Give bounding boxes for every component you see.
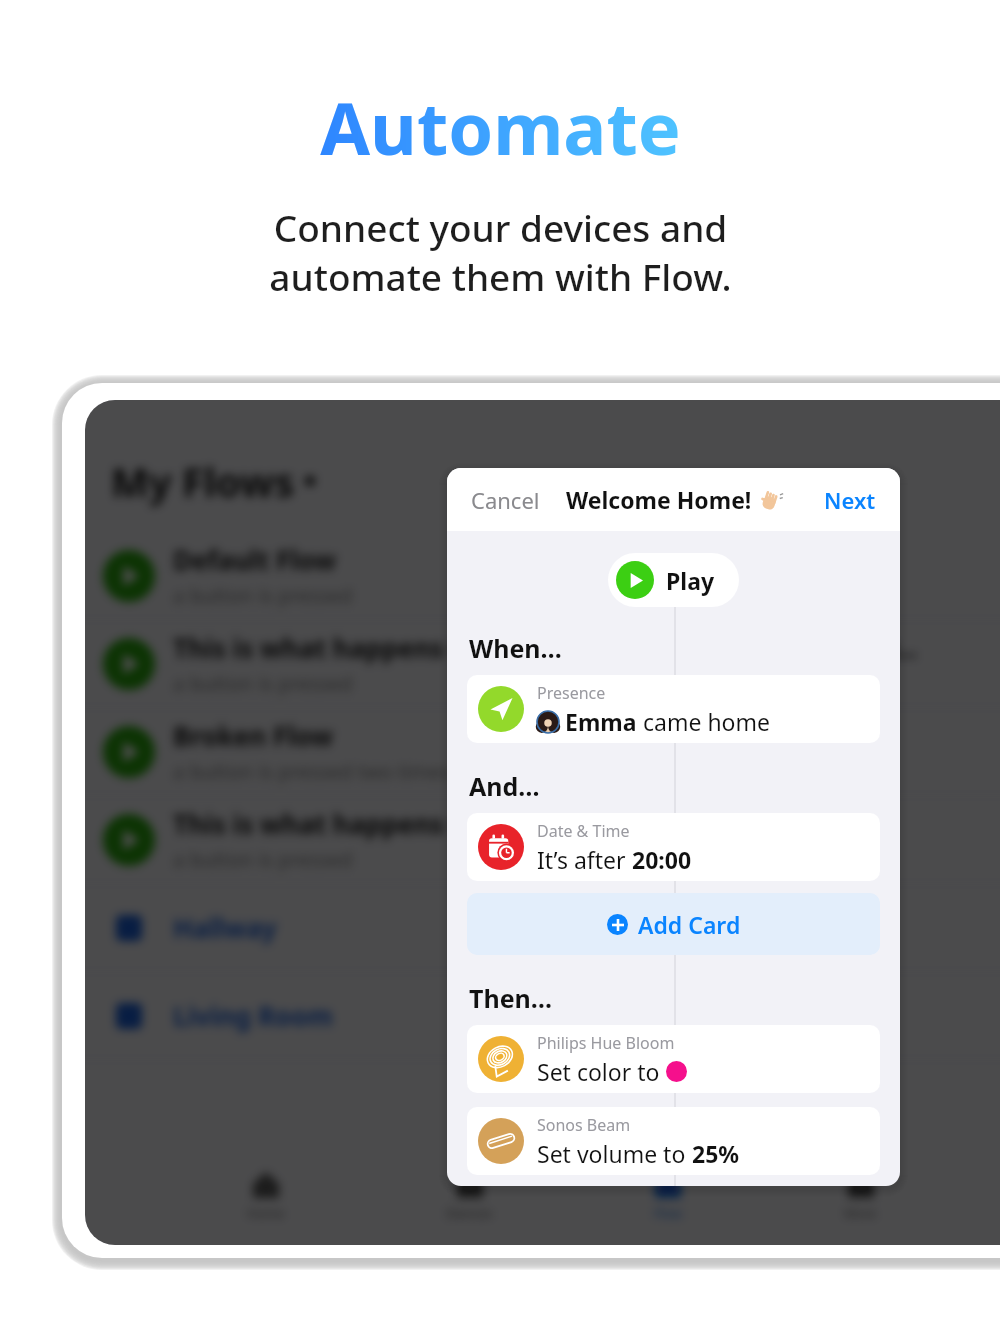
staticText: Add Card	[638, 909, 741, 940]
button[interactable]: Date & Time	[467, 813, 880, 881]
staticText: Cancel	[471, 485, 540, 515]
staticText: a button is pressed two times	[173, 758, 450, 785]
staticText: 20:00	[632, 844, 692, 875]
staticText: Default Flow	[173, 542, 336, 577]
button[interactable]: Add Card	[467, 893, 880, 955]
button[interactable]: Sonos Beam	[467, 1107, 880, 1175]
staticText: Set color to	[537, 1056, 666, 1087]
staticText: My Flows	[111, 454, 295, 508]
staticText: Hallway	[173, 910, 277, 945]
staticText: Philips Hue Bloom	[537, 1032, 675, 1054]
staticText: Date & Time	[537, 820, 630, 842]
staticText: Connect your devices and automate them w…	[269, 202, 732, 302]
staticText: 25%	[692, 1138, 740, 1169]
staticText: Then…	[469, 981, 553, 1015]
button[interactable]: Play	[608, 553, 739, 607]
staticText: It’s after	[537, 844, 632, 875]
staticText: Living Room	[173, 998, 333, 1033]
staticText: Next	[824, 485, 876, 515]
staticText: Set volume to	[537, 1138, 692, 1169]
staticText: Sonos Beam	[537, 1114, 631, 1136]
button[interactable]: Cancel	[467, 481, 544, 519]
staticText: Presence	[537, 682, 606, 704]
staticText: Emma	[565, 706, 637, 737]
staticText: Broken Flow	[173, 718, 333, 753]
button[interactable]: Philips Hue Bloom	[467, 1025, 880, 1093]
staticText: Automate	[320, 78, 681, 176]
staticText: This is what happens when a button is pr…	[173, 806, 776, 841]
staticText: And…	[469, 769, 540, 803]
staticText: When…	[469, 631, 562, 665]
staticText: came home	[637, 706, 770, 737]
button[interactable]: Presence	[467, 675, 880, 743]
staticText: Play	[666, 565, 715, 596]
staticText: This is what happens when a button is pr…	[173, 630, 918, 665]
button[interactable]: Next	[820, 481, 880, 519]
staticText: Welcome Home!	[566, 484, 752, 515]
